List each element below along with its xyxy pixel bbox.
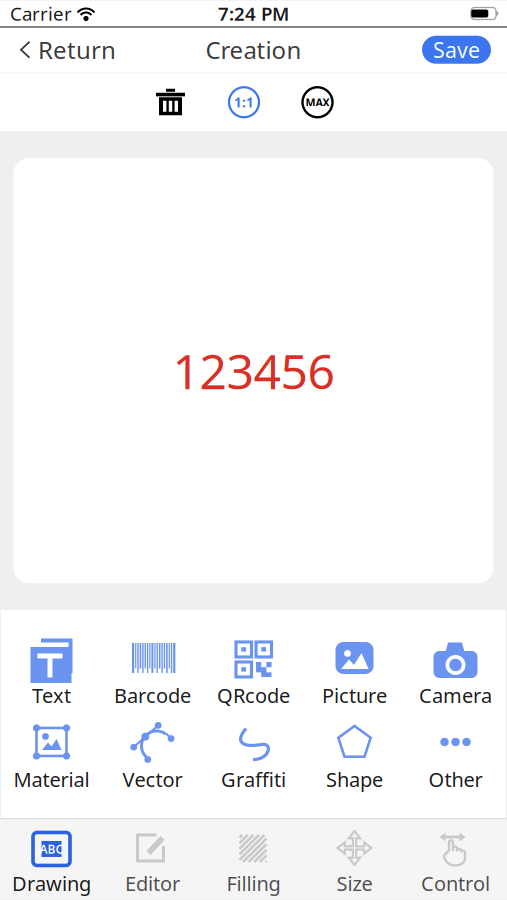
button[interactable]: Size bbox=[304, 819, 405, 899]
staticText: 123456 bbox=[172, 339, 334, 403]
staticText: Control bbox=[421, 870, 490, 897]
staticText: Size bbox=[336, 870, 372, 897]
staticText: Editor bbox=[125, 870, 180, 897]
staticText: Graffiti bbox=[221, 766, 286, 793]
staticText: Other bbox=[428, 766, 482, 793]
button[interactable]: Barcode bbox=[102, 630, 203, 714]
staticText: Barcode bbox=[114, 682, 191, 709]
staticText: Creation bbox=[205, 34, 301, 66]
button[interactable]: Camera bbox=[405, 630, 506, 714]
staticText: ABC bbox=[39, 841, 63, 857]
staticText: Vector bbox=[122, 766, 182, 793]
button[interactable]: Other bbox=[405, 714, 506, 798]
button[interactable]: Vector bbox=[102, 714, 203, 798]
staticText: 7:24 PM bbox=[218, 1, 289, 26]
staticText: QRcode bbox=[217, 682, 290, 709]
staticText: Camera bbox=[419, 682, 492, 709]
button[interactable]: Control bbox=[405, 819, 506, 899]
button[interactable]: Graffiti bbox=[203, 714, 304, 798]
button[interactable]: Editor bbox=[102, 819, 203, 899]
button[interactable]: Maximum size bbox=[281, 77, 354, 127]
button[interactable]: Actual size bbox=[207, 77, 281, 127]
button[interactable]: Text bbox=[1, 630, 102, 714]
staticText: MAX bbox=[305, 95, 329, 109]
staticText: Text bbox=[32, 682, 71, 709]
button[interactable]: ABC bbox=[1, 819, 102, 899]
button[interactable]: QRcode bbox=[203, 630, 304, 714]
staticText: Save bbox=[433, 36, 480, 64]
staticText: Carrier bbox=[10, 1, 72, 26]
button[interactable]: Delete bbox=[134, 77, 207, 127]
staticText: Filling bbox=[226, 870, 280, 897]
staticText: Drawing bbox=[12, 870, 91, 897]
staticText: Shape bbox=[326, 766, 383, 793]
button[interactable]: Filling bbox=[203, 819, 304, 899]
button[interactable]: Material bbox=[1, 714, 102, 798]
button[interactable]: Return bbox=[0, 28, 128, 72]
staticText: 1:1 bbox=[234, 93, 254, 111]
staticText: Return bbox=[38, 34, 116, 66]
button[interactable]: Shape bbox=[304, 714, 405, 798]
button[interactable]: Save bbox=[422, 36, 491, 64]
button[interactable]: Picture bbox=[304, 630, 405, 714]
staticText: Picture bbox=[322, 682, 387, 709]
staticText: Material bbox=[13, 766, 89, 793]
